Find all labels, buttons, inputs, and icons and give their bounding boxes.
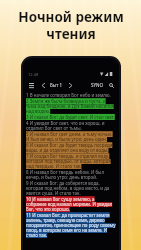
- staticText: Быт 1: [50, 82, 63, 88]
- staticText: 11 И сказал Бог: да произрастит земля зе…: [26, 212, 116, 238]
- staticText: SYNO: [91, 82, 103, 88]
- button[interactable]: Search: [107, 81, 115, 89]
- staticText: 10 И назвал Бог сушу землею, а собрание …: [26, 196, 116, 212]
- staticText: 2 Земля же была безвидна и пуста, и тьма…: [26, 98, 116, 114]
- staticText: 12:48: [28, 72, 39, 77]
- staticText: 9 И сказал Бог: да соберется вода, котор…: [26, 180, 116, 196]
- staticText: 7 И создал Бог твердь, и отделил воду, к…: [26, 153, 116, 169]
- staticText: 1 В начале сотворил Бог небо и землю.: [26, 92, 111, 98]
- button[interactable]: Menu: [27, 81, 35, 89]
- button[interactable]: Next chapter: [66, 81, 74, 89]
- staticText: 6 И сказал Бог: да будет твердь посреди …: [26, 142, 116, 153]
- staticText: 8 И назвал Бог твердь небом. И был вечер…: [26, 169, 116, 180]
- button[interactable]: Быт 1: [49, 82, 64, 88]
- staticText: Ночной режим чтения: [18, 8, 124, 43]
- staticText: 5 И назвал Бог свет днем, а тьму ночью. …: [26, 131, 116, 142]
- staticText: 3 И сказал Бог: да будет свет. И стал св…: [26, 114, 115, 120]
- staticText: 4 И увидел Бог свет, что он хорош, и отд…: [26, 120, 116, 131]
- button[interactable]: Previous chapter: [39, 81, 47, 89]
- button[interactable]: SYNO: [90, 82, 104, 88]
